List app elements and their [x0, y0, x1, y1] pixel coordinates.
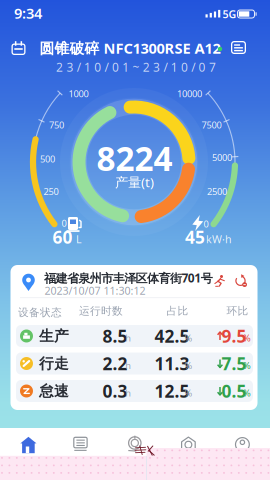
staticText: 750: [49, 119, 64, 131]
staticText: 2023/10/07 11:30:12: [44, 283, 145, 298]
staticText: 9:34: [14, 3, 42, 23]
button[interactable]: 23/10/01~23/10/07: [56, 59, 216, 75]
staticText: 7500: [202, 119, 222, 131]
staticText: 45: [185, 225, 205, 248]
button[interactable]: 刷新: [234, 274, 248, 288]
staticText: h: [125, 387, 131, 399]
staticText: 12.5: [154, 379, 189, 402]
staticText: kW·h: [206, 232, 232, 246]
button[interactable]: 选择设备: [9, 40, 27, 56]
staticText: 42.5: [154, 324, 189, 347]
staticText: 圆锥破碎 NFC1300RSE A12: [39, 38, 220, 58]
button[interactable]: 首页: [20, 436, 37, 453]
staticText: 福建省泉州市丰泽区体育街701号: [44, 270, 213, 286]
staticText: 产量(t): [115, 173, 154, 191]
staticText: 环比: [226, 304, 248, 317]
staticText: 0.5: [221, 379, 246, 402]
staticText: 7.5: [221, 352, 246, 375]
staticText: 60: [52, 225, 72, 248]
staticText: 5000: [212, 151, 232, 164]
staticText: 250: [43, 185, 58, 198]
staticText: %: [185, 332, 193, 344]
staticText: 0: [203, 218, 208, 230]
staticText: %: [185, 359, 193, 372]
staticText: 23/10/01~23/10/07: [56, 59, 216, 75]
button[interactable]: 监控录像: [126, 433, 144, 453]
staticText: 11.3: [154, 352, 189, 375]
staticText: h: [125, 359, 131, 372]
staticText: 2500: [207, 185, 227, 198]
staticText: 500: [40, 153, 55, 165]
button[interactable]: 报表: [73, 436, 88, 451]
staticText: h: [125, 332, 131, 344]
button[interactable]: 圆锥破碎 NFC1300RSE A12: [39, 38, 220, 58]
staticText: %: [243, 359, 251, 372]
staticText: 5G: [222, 7, 236, 21]
staticText: 0.3: [102, 379, 127, 402]
staticText: 0: [61, 217, 66, 229]
staticText: 怠速: [39, 382, 69, 400]
staticText: 9.5: [221, 324, 246, 347]
button[interactable]: 我的: [235, 437, 250, 452]
button[interactable]: 报表: [230, 39, 246, 55]
staticText: 生产: [39, 327, 69, 345]
staticText: 1000: [69, 87, 89, 100]
staticText: 运行时数: [79, 304, 123, 317]
button[interactable]: 轨迹: [212, 273, 226, 287]
staticText: 设备状态: [18, 306, 62, 319]
staticText: 8.5: [102, 324, 127, 347]
button[interactable]: 监控: [181, 436, 196, 450]
staticText: %: [243, 387, 251, 399]
staticText: 8224: [96, 136, 172, 180]
staticText: 行走: [39, 354, 69, 372]
staticText: %: [243, 332, 251, 344]
staticText: 占比: [166, 304, 188, 317]
staticText: %: [185, 387, 193, 399]
staticText: 2.2: [102, 352, 127, 375]
staticText: 10000: [177, 87, 202, 100]
staticText: L: [76, 232, 82, 246]
